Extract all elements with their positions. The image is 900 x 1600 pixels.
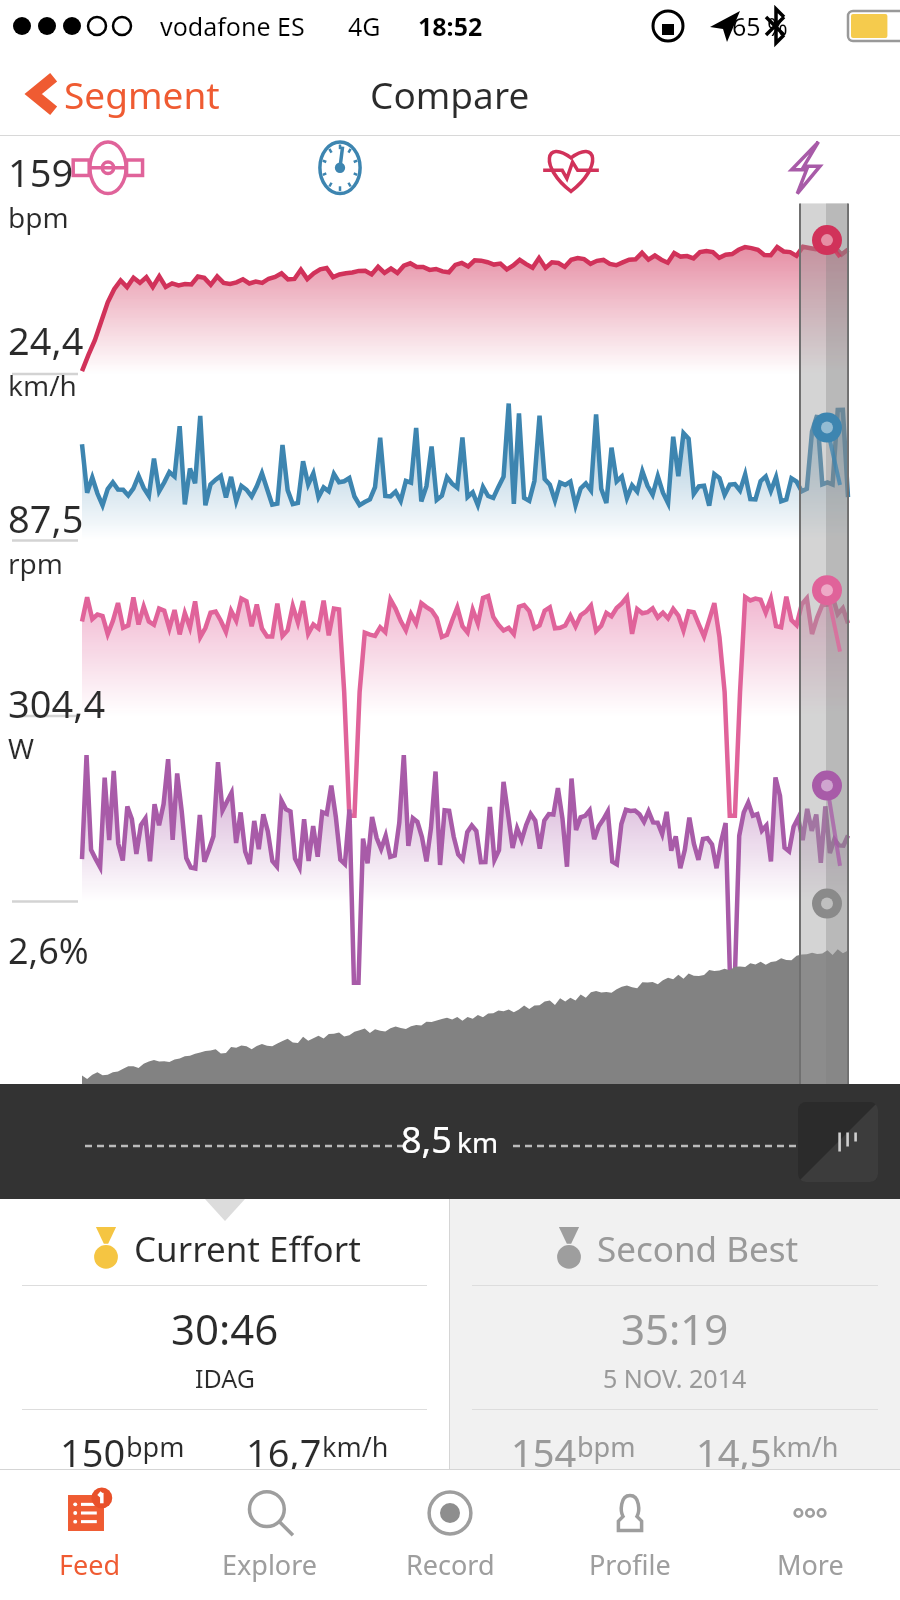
staticText: 304,4 — [8, 677, 106, 729]
staticText: 5 NOV. 2014 — [603, 1361, 747, 1395]
staticText: bpm — [126, 1428, 185, 1465]
staticText: km — [457, 1123, 499, 1161]
staticText: Segment — [64, 69, 220, 119]
button[interactable]: Explore — [180, 1470, 360, 1600]
staticText: 2,6% — [8, 926, 89, 975]
button[interactable]: Segment — [20, 63, 226, 125]
staticText: W — [8, 729, 35, 767]
staticText: 8,5 — [401, 1115, 452, 1164]
staticText: 14,5 — [696, 1426, 772, 1469]
button[interactable]: Feed — [0, 1470, 180, 1600]
staticText: 18:52 — [418, 9, 483, 43]
staticText: IDAG — [195, 1361, 255, 1395]
staticText: 87,5 — [8, 492, 84, 544]
staticText: vodafone ES — [160, 9, 305, 43]
button[interactable]: Second Best — [450, 1199, 900, 1469]
staticText: 154 — [511, 1426, 577, 1469]
staticText: km/h — [8, 366, 77, 404]
staticText: Feed — [59, 1546, 121, 1583]
staticText: 159 — [8, 146, 74, 198]
staticText: 16,7 — [246, 1426, 322, 1469]
staticText: Compare — [370, 69, 530, 119]
staticText: bpm — [8, 198, 69, 236]
staticText: More — [777, 1546, 844, 1583]
staticText: Current Effort — [134, 1225, 361, 1273]
staticText: 35:19 — [621, 1300, 729, 1357]
staticText: Second Best — [597, 1225, 799, 1273]
button[interactable]: Current Effort — [0, 1199, 449, 1469]
staticText: 30:46 — [171, 1300, 279, 1357]
button[interactable]: Profile — [540, 1470, 720, 1600]
button[interactable]: Chart options — [798, 1102, 878, 1182]
staticText: 4G — [348, 9, 381, 43]
staticText: 24,4 — [8, 314, 84, 366]
staticText: rpm — [8, 544, 63, 582]
staticText: 150 — [60, 1426, 126, 1469]
button[interactable]: More — [720, 1470, 900, 1600]
staticText: 65 % — [732, 9, 788, 43]
button[interactable]: Record — [360, 1470, 540, 1600]
staticText: km/h — [322, 1428, 389, 1465]
staticText: km/h — [772, 1428, 839, 1465]
staticText: Explore — [222, 1546, 318, 1583]
staticText: Profile — [589, 1546, 671, 1583]
staticText: bpm — [577, 1428, 636, 1465]
staticText: Record — [406, 1546, 495, 1583]
